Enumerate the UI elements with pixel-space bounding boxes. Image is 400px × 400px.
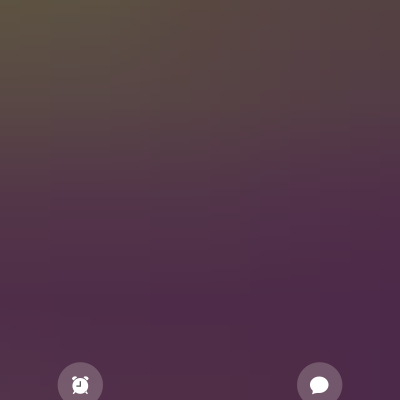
button[interactable]: Alarm <box>58 362 103 400</box>
button[interactable]: Messages <box>297 362 342 400</box>
